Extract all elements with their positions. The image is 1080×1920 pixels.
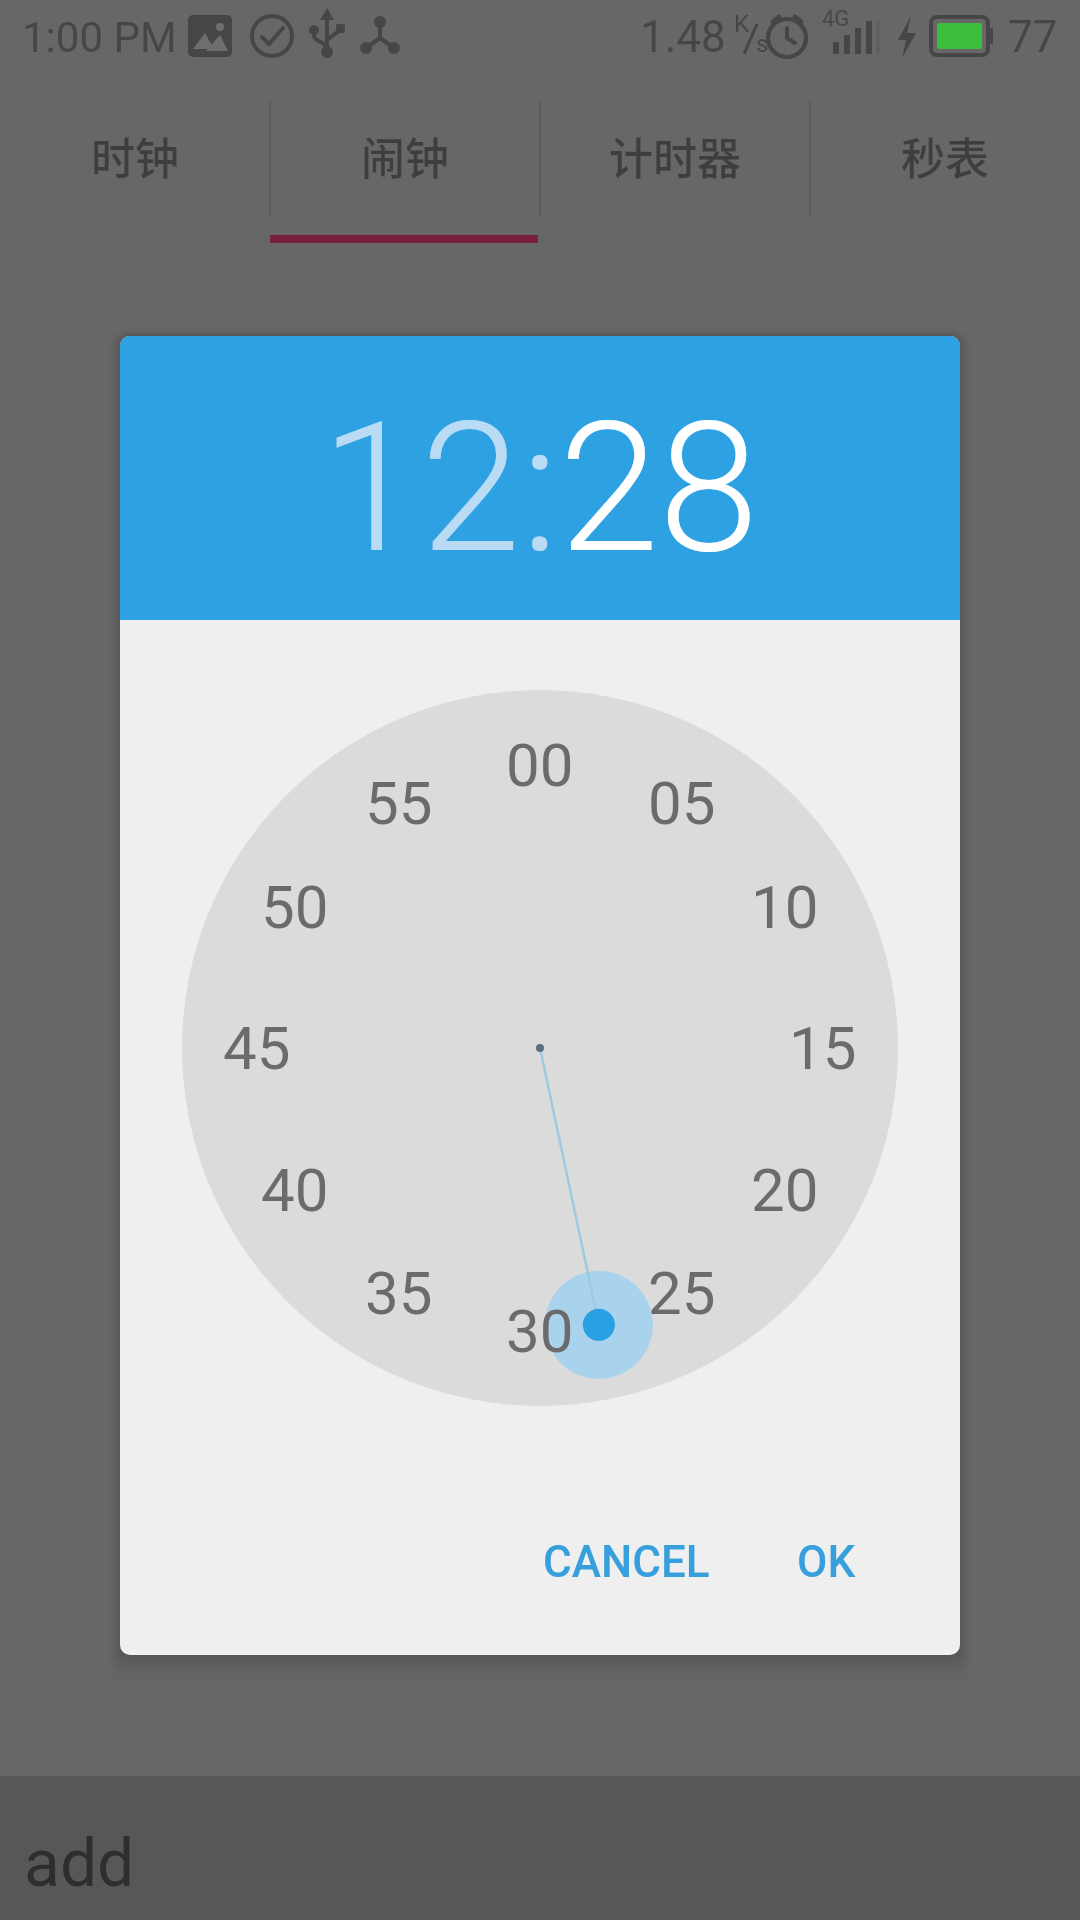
staticText: s [756,30,769,58]
button[interactable]: add [0,1776,1080,1920]
staticText: 25 [648,1258,716,1328]
button[interactable]: CANCEL [516,1510,736,1614]
staticText: K [734,10,750,38]
button[interactable]: 闹钟 [270,66,540,246]
staticText: 20 [751,1155,819,1225]
staticText: 45 [223,1013,291,1083]
staticText: 77 [1008,11,1058,63]
staticText: OK [797,1536,856,1588]
staticText: 50 [261,872,329,942]
staticText: 35 [365,1258,433,1328]
staticText: 05 [648,768,716,838]
staticText: 12 [321,383,521,594]
staticText: 计时器 [609,124,741,188]
staticText: 闹钟 [361,124,449,188]
button[interactable]: 时钟 [0,66,270,246]
staticText: 30 [506,1296,574,1366]
staticText: 时钟 [91,124,179,188]
staticText: 28 [559,383,759,594]
staticText: 10 [751,872,819,942]
staticText: CANCEL [543,1536,710,1588]
staticText: 55 [365,768,433,838]
staticText: add [24,1825,135,1902]
staticText: 40 [261,1155,329,1225]
staticText: 00 [506,730,574,800]
staticText: 秒表 [901,124,989,188]
staticText: : [521,383,559,594]
staticText: 1:00 PM [22,13,177,62]
button[interactable]: 秒表 [810,66,1080,246]
staticText: 1.48 [640,11,726,63]
button[interactable]: OK [766,1510,886,1614]
button[interactable]: 计时器 [540,66,810,246]
staticText: 4G [822,6,850,32]
staticText: 15 [789,1013,857,1083]
